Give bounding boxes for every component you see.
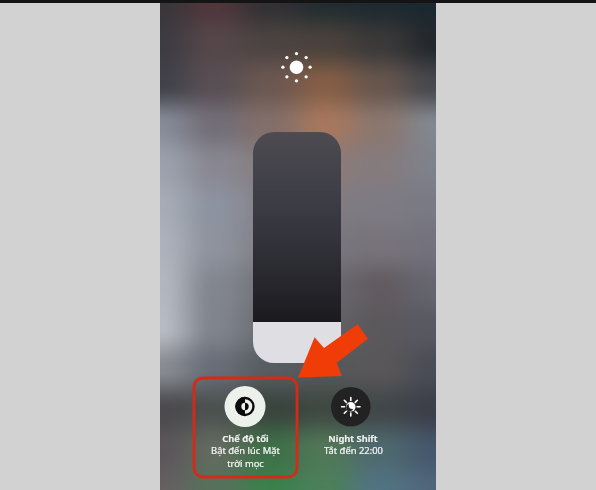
staticText: Tắt đến 22:00 xyxy=(324,444,383,457)
staticText: Night Shift xyxy=(328,432,378,445)
button[interactable]: Chế độ tối xyxy=(202,384,288,470)
button[interactable]: Brightness xyxy=(278,49,314,85)
button[interactable]: Brightness slider xyxy=(253,132,341,363)
staticText: trời mọc xyxy=(227,457,264,470)
staticText: Bật đến lúc Mặt xyxy=(211,444,280,457)
staticText: Chế độ tối xyxy=(222,432,269,445)
button[interactable]: Night Shift xyxy=(309,384,395,458)
